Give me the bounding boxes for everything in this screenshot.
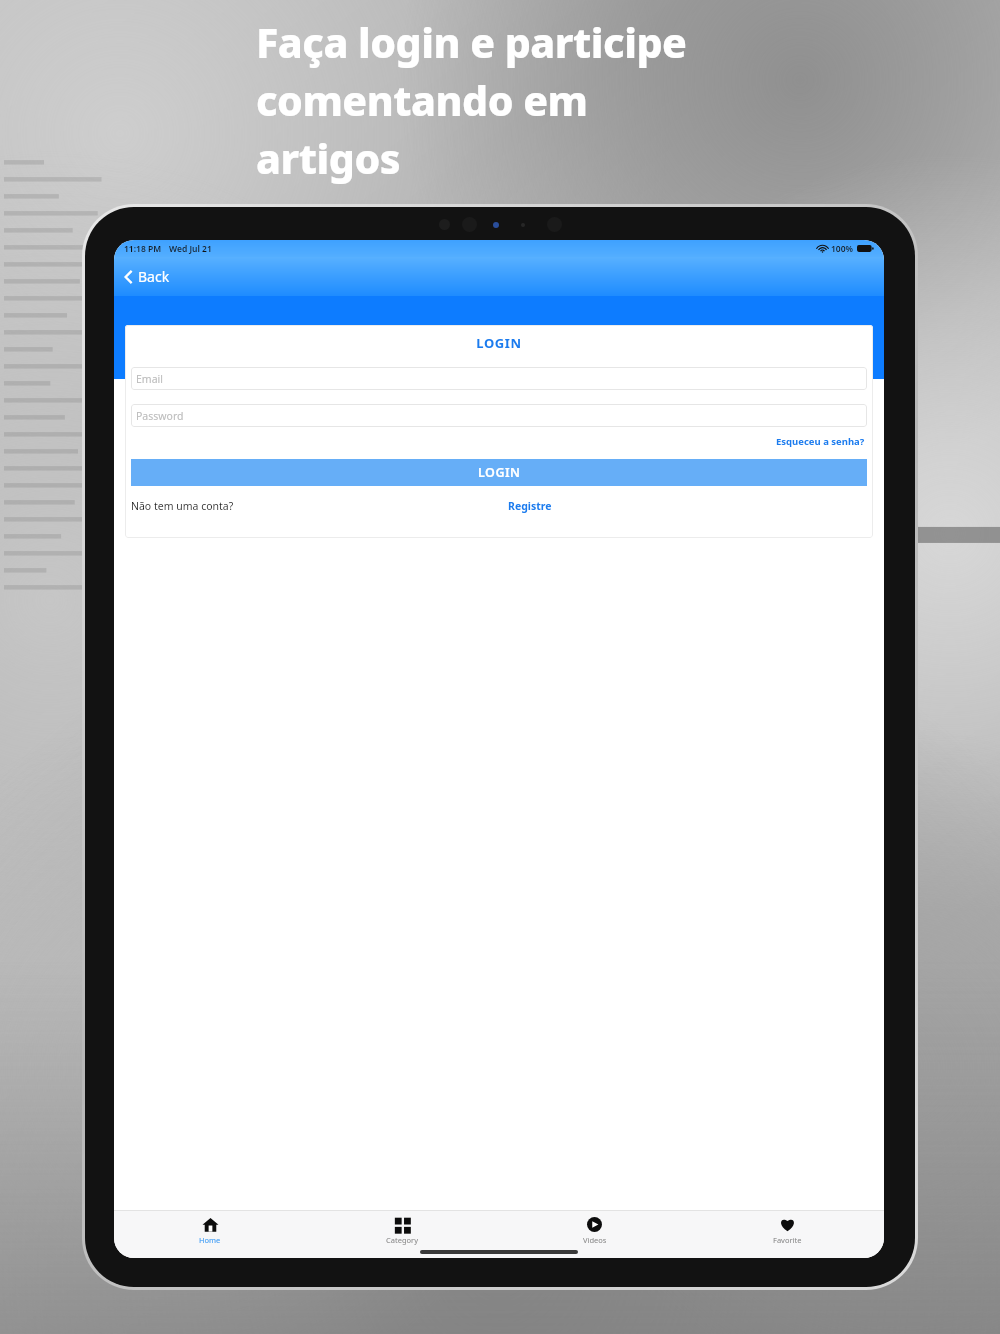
staticText: 100% <box>831 243 854 255</box>
button[interactable]: Videos <box>498 1210 691 1258</box>
other: Favorite <box>779 1216 796 1233</box>
staticText: Email <box>136 372 163 386</box>
button[interactable]: Category <box>306 1210 498 1258</box>
staticText: Category <box>386 1235 418 1245</box>
staticText: Back <box>138 267 170 286</box>
staticText: 11:18 PM <box>124 243 162 255</box>
staticText: Password <box>136 409 184 423</box>
button[interactable]: Esqueceu a senha? <box>774 433 867 450</box>
button[interactable]: Home <box>114 1210 306 1258</box>
staticText: Não tem uma conta? <box>131 499 234 513</box>
staticText: Esqueceu a senha? <box>776 435 865 448</box>
staticText: comentando em <box>256 72 588 128</box>
button[interactable]: Back <box>120 262 174 291</box>
staticText: Registre <box>508 499 552 513</box>
button[interactable]: LOGIN <box>131 459 867 486</box>
other: Videos <box>586 1216 603 1233</box>
staticText: Wed Jul 21 <box>169 243 212 255</box>
staticText: Faça login e participe <box>256 14 687 70</box>
button[interactable]: Favorite <box>691 1210 884 1258</box>
staticText: LOGIN <box>478 464 521 481</box>
other: Category <box>394 1216 411 1233</box>
button[interactable]: Email <box>131 367 867 390</box>
staticText: Videos <box>583 1235 607 1245</box>
button[interactable]: Registre <box>506 497 554 515</box>
other: Home <box>202 1216 219 1233</box>
staticText: Favorite <box>773 1235 802 1245</box>
staticText: Home <box>199 1235 221 1245</box>
button[interactable]: Password <box>131 404 867 427</box>
staticText: artigos <box>256 130 401 186</box>
staticText: LOGIN <box>131 334 867 352</box>
